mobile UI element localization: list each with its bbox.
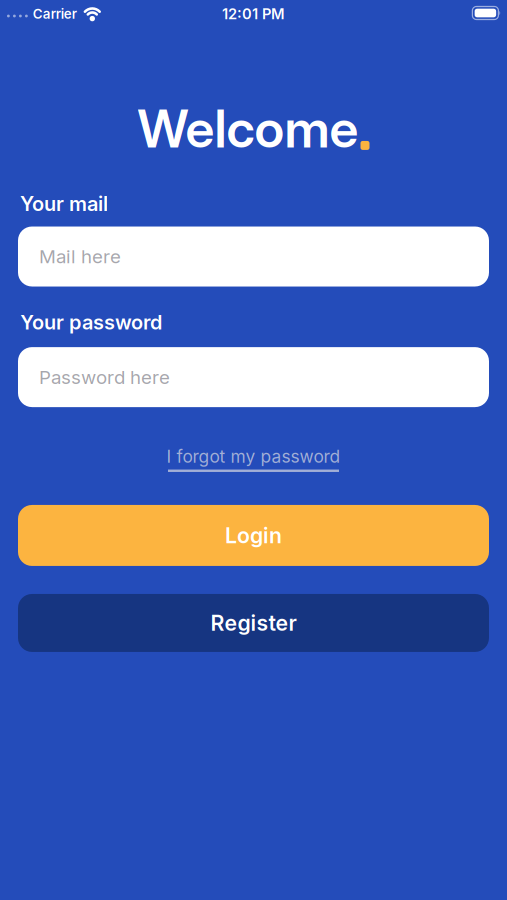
staticText: Your mail — [20, 192, 108, 215]
staticText: Login — [225, 523, 282, 548]
button[interactable]: I forgot my password — [166, 446, 340, 472]
staticText: Register — [210, 610, 296, 636]
staticText: I forgot my password — [166, 446, 340, 466]
button[interactable]: Login — [0, 505, 507, 566]
button[interactable]: Password here — [0, 347, 507, 407]
button[interactable]: Register — [0, 594, 507, 652]
button[interactable]: Mail here — [0, 226, 507, 286]
staticText: Password here — [39, 366, 170, 388]
staticText: Your password — [20, 310, 162, 334]
staticText: Mail here — [39, 245, 121, 267]
staticText: Welcome — [137, 97, 358, 160]
staticText: Carrier — [33, 6, 77, 22]
staticText: 12:01 PM — [222, 5, 285, 23]
